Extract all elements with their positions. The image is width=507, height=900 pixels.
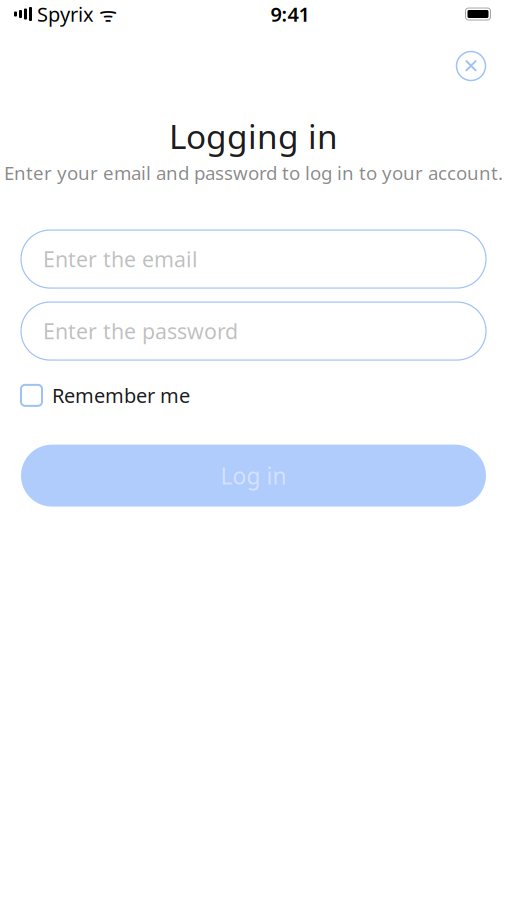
staticText: Spyrix: [32, 1, 94, 27]
staticText: Logging in: [169, 114, 338, 158]
button[interactable]: Log in: [21, 445, 486, 507]
staticText: 9:41: [270, 1, 309, 27]
staticText: ✕: [462, 55, 479, 77]
staticText: Log in: [220, 461, 286, 491]
staticText: Enter the email: [43, 245, 198, 273]
button[interactable]: Close: [449, 44, 493, 88]
staticText: Remember me: [52, 382, 190, 409]
button[interactable]: Remember me: [0, 376, 507, 415]
staticText: Enter the password: [43, 317, 238, 345]
staticText: Enter your email and password to log in …: [4, 160, 503, 185]
staticText: ᯤ: [94, 1, 117, 27]
